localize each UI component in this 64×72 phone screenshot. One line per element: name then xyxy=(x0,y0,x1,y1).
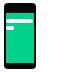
button[interactable] xyxy=(6,26,14,30)
button[interactable] xyxy=(6,19,33,23)
